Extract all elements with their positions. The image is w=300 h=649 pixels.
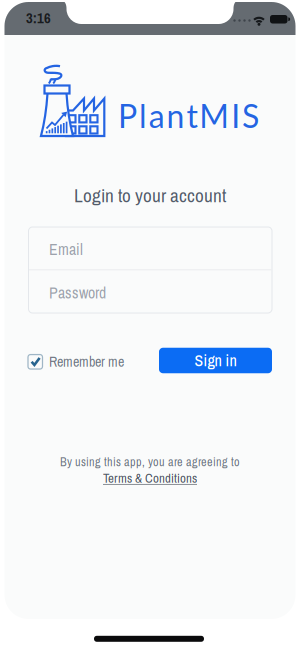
button[interactable]: Password [28,272,272,314]
button[interactable]: Sign in [159,348,272,373]
staticText: Sign in [194,350,236,371]
staticText: Login to your account [74,182,226,208]
button[interactable]: Terms & Conditions [103,469,197,487]
staticText: M [199,96,229,135]
button[interactable]: Email [28,228,272,270]
staticText: Email [49,239,83,260]
button[interactable]: Remember me [28,352,124,371]
staticText: By using this app, you are agreeing to [60,454,240,470]
staticText: a [149,96,165,135]
staticText: Remember me [49,352,124,371]
staticText: n [167,96,185,135]
staticText: t [186,96,197,135]
staticText: S [242,96,259,135]
staticText: Terms & Conditions [103,469,197,487]
staticText: P [118,96,137,135]
staticText: Password [49,282,106,303]
staticText: l [139,96,147,135]
staticText: I [231,96,240,135]
staticText: 3:16 [26,8,51,28]
